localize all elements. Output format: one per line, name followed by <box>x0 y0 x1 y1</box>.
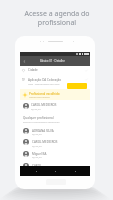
staticText: ADRIANA SILVA <box>32 129 54 133</box>
staticText: Acesse a agenda do profissional <box>24 9 90 27</box>
button[interactable]: CAROL MEDEIROS <box>20 138 90 150</box>
staticText: CAROL MEDEIROS <box>31 103 57 107</box>
staticText: Profissional escolhido <box>29 92 60 96</box>
button[interactable]: CAROL MEDEIROS <box>20 100 90 112</box>
button[interactable]: CAROL <box>20 161 90 173</box>
other: Back <box>22 59 27 64</box>
button[interactable]: Voltar <box>32 167 40 175</box>
staticText: Miguel BA <box>32 152 47 156</box>
button[interactable] <box>20 56 90 66</box>
staticText: R$ 50,00 <box>32 155 42 158</box>
staticText: R$ 50,00 <box>31 107 41 110</box>
button[interactable]: Inicio <box>51 167 59 175</box>
button[interactable]: Servico <box>20 75 90 89</box>
staticText: R$ 50,00 <box>32 132 42 135</box>
button[interactable]: Profissional escolhido <box>20 89 90 100</box>
staticText: CAROL MEDEIROS <box>32 140 58 144</box>
button[interactable]: Cidade <box>20 66 90 74</box>
staticText: Qualquer profissional <box>23 116 54 120</box>
staticText: R$ 50,00 <box>32 144 42 147</box>
button[interactable]: ADRIANA SILVA <box>20 126 90 138</box>
button[interactable]: Recentes <box>71 167 79 175</box>
staticText: Toque para alterar <box>29 95 50 98</box>
button[interactable]: Miguel BA <box>20 149 90 161</box>
staticText: Aplicação DA Coloração <box>28 78 62 82</box>
staticText: Cidade <box>28 68 38 72</box>
staticText: Básico 01 · Detalhe <box>40 59 65 63</box>
button[interactable]: Selecionado <box>67 83 87 89</box>
staticText: Hoje · atendimento em casa <box>28 82 60 85</box>
staticText: Escolha o profissional disponível <box>23 120 60 123</box>
staticText: CAROL <box>32 164 42 168</box>
